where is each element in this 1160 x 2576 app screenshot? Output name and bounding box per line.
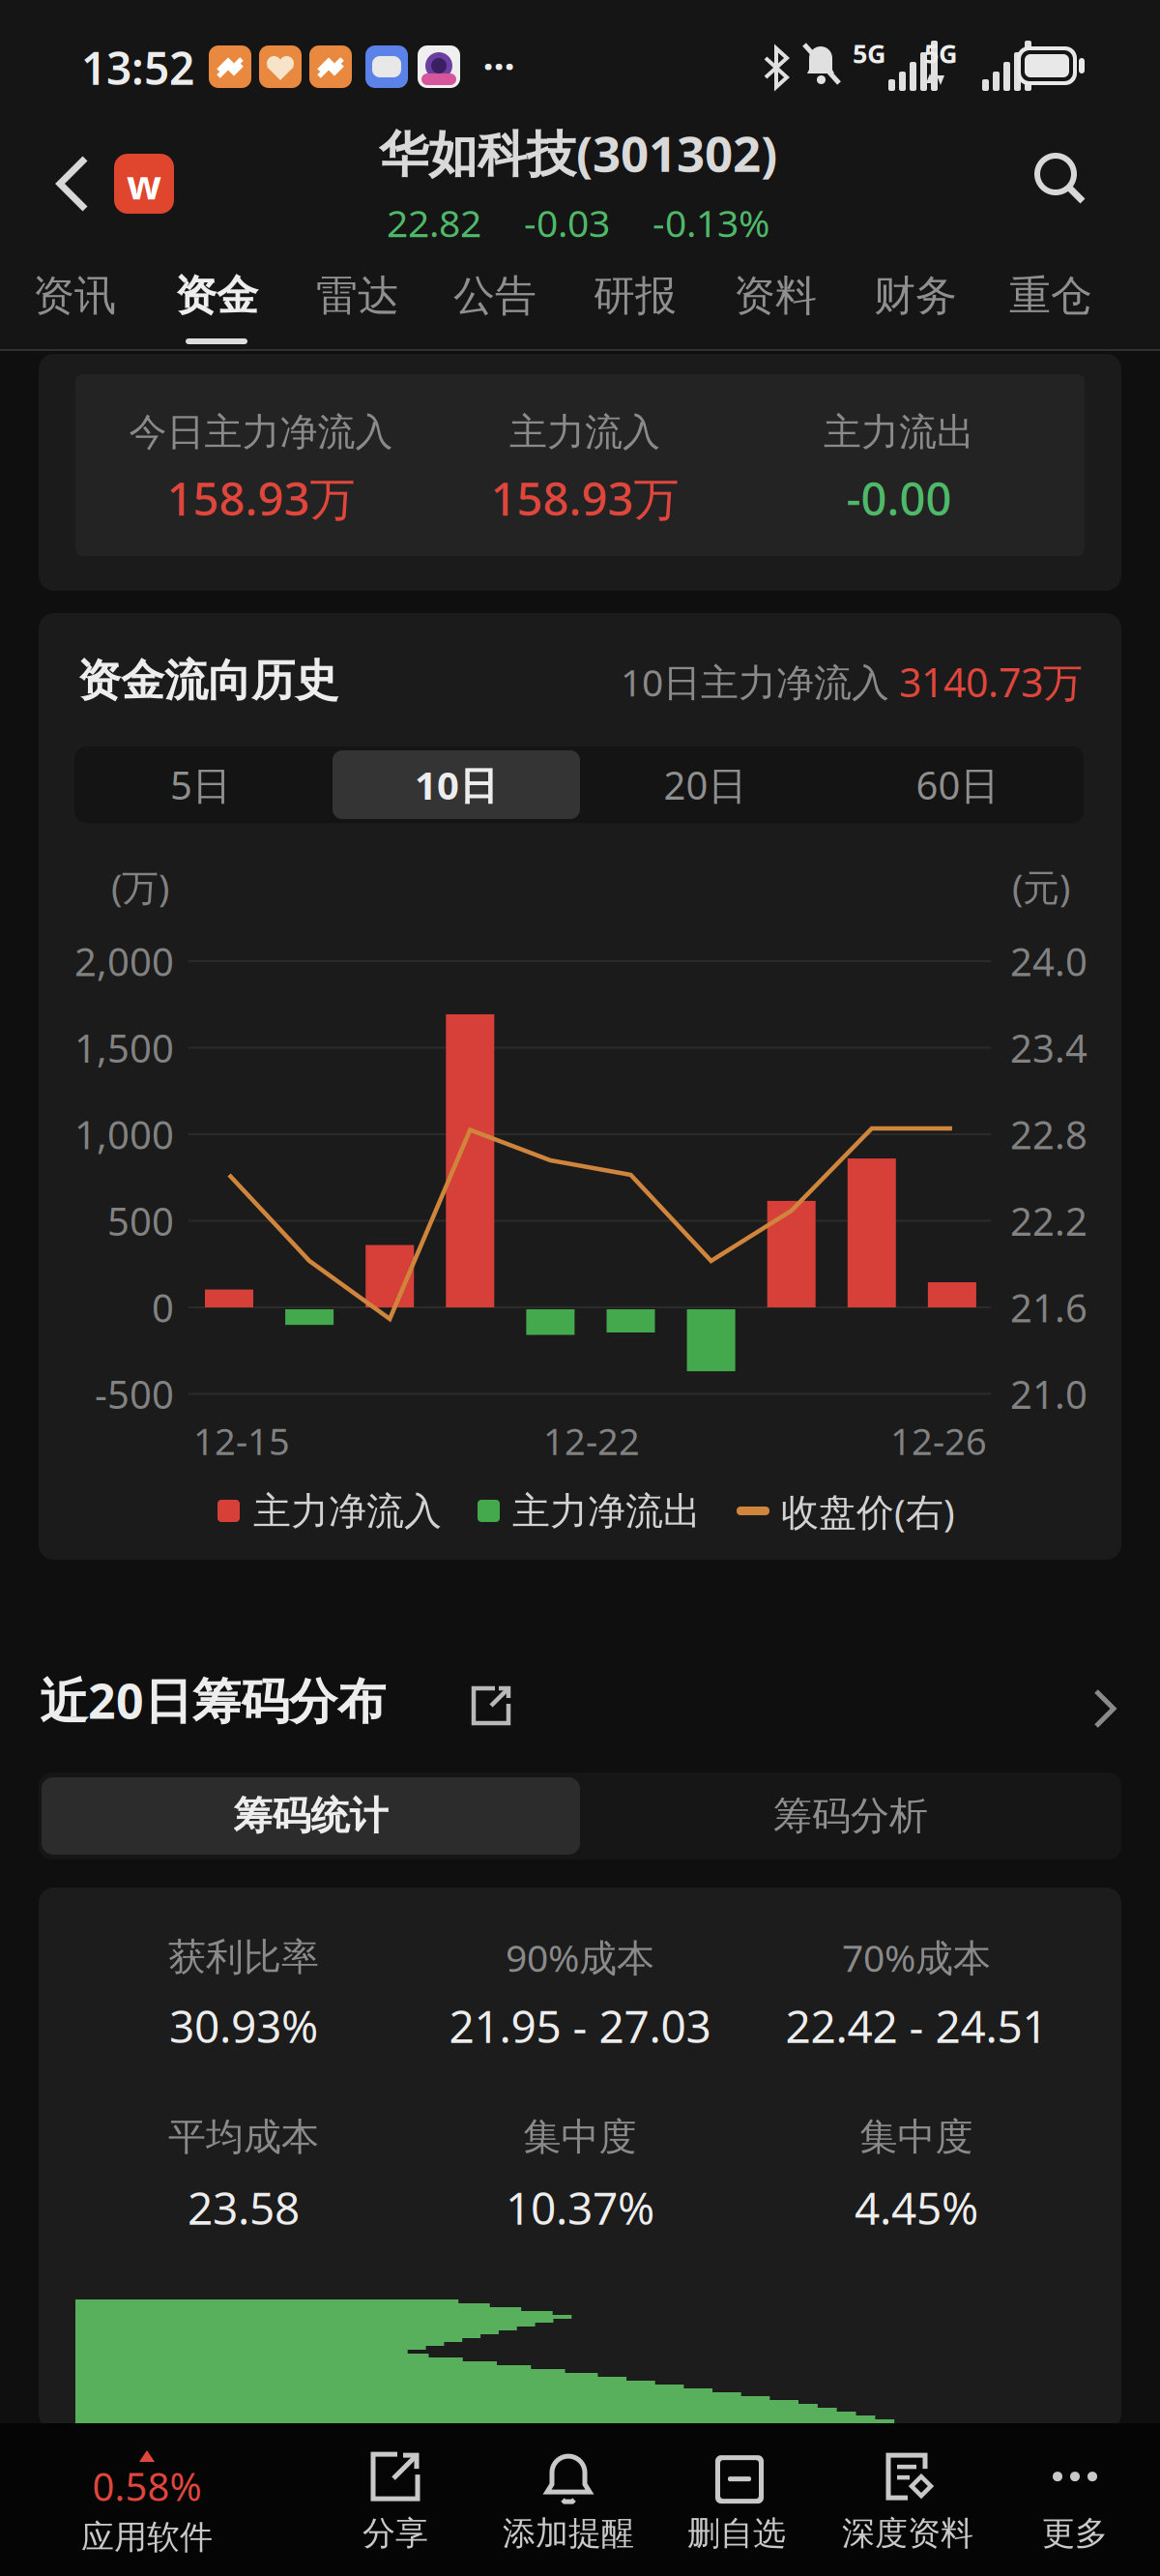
staticText: 22.2: [1010, 1195, 1087, 1246]
button[interactable]: Search: [1027, 145, 1094, 213]
staticText: 22.82: [387, 197, 481, 247]
staticText: 2,000: [74, 935, 174, 987]
staticText: 资料: [734, 270, 817, 321]
staticText: 雷达: [316, 270, 399, 321]
staticText: 12-15: [193, 1416, 290, 1465]
button[interactable]: 更多: [993, 2439, 1157, 2564]
staticText: 60日: [916, 759, 999, 810]
staticText: (万): [111, 862, 169, 911]
staticText: 应用软件: [81, 2517, 213, 2558]
button[interactable]: 筹码分析: [580, 1772, 1121, 1859]
staticText: 21.95 - 27.03: [449, 1996, 711, 2055]
button[interactable]: 添加提醒: [486, 2439, 651, 2564]
button[interactable]: 资金: [154, 259, 279, 333]
staticText: 主力流出: [824, 409, 974, 455]
button[interactable]: 研报: [572, 259, 698, 333]
staticText: 21.0: [1010, 1368, 1087, 1420]
staticText: 4.45%: [855, 2178, 978, 2237]
button[interactable]: 资料: [712, 259, 838, 333]
staticText: 近20日筹码分布: [40, 1668, 386, 1732]
staticText: 500: [107, 1195, 174, 1246]
button[interactable]: 资讯: [12, 259, 137, 333]
staticText: 更多: [1042, 2513, 1108, 2554]
staticText: 1,000: [74, 1109, 174, 1160]
staticText: 3140.73万: [899, 655, 1083, 708]
staticText: 5日: [170, 759, 231, 810]
staticText: 公告: [453, 270, 536, 321]
staticText: 23.4: [1010, 1022, 1087, 1073]
staticText: ···: [483, 40, 515, 91]
button[interactable]: App icon: [114, 154, 174, 214]
staticText: 0: [152, 1282, 174, 1333]
staticText: -0.03: [524, 197, 610, 247]
button[interactable]: 深度资料: [826, 2439, 990, 2564]
staticText: 获利比率: [168, 1934, 319, 1980]
button[interactable]: 删自选: [654, 2439, 819, 2564]
staticText: 30.93%: [169, 1996, 318, 2055]
staticText: 20日: [664, 759, 747, 810]
staticText: 资金: [175, 270, 258, 321]
staticText: 12-22: [543, 1416, 640, 1465]
button[interactable]: 10日: [333, 750, 580, 819]
staticText: 10.37%: [506, 2178, 654, 2237]
button[interactable]: 0.58%: [89, 2433, 224, 2562]
staticText: -0.00: [846, 468, 952, 528]
staticText: 主力净流出: [512, 1488, 701, 1534]
button[interactable]: 20日: [579, 746, 831, 823]
staticText: 0.58%: [92, 2460, 202, 2512]
staticText: 158.93万: [491, 468, 679, 528]
button[interactable]: 60日: [831, 746, 1084, 823]
button[interactable]: 雷达: [295, 259, 420, 333]
staticText: 23.58: [188, 2178, 300, 2237]
staticText: 5G: [853, 36, 886, 71]
staticText: -0.13%: [652, 197, 769, 247]
staticText: 70%成本: [842, 1932, 991, 1982]
staticText: 平均成本: [168, 2114, 319, 2160]
button[interactable]: 筹码统计: [42, 1777, 580, 1855]
staticText: 深度资料: [842, 2513, 973, 2554]
staticText: 1,500: [74, 1022, 174, 1073]
button[interactable]: 重仓: [988, 259, 1114, 333]
button[interactable]: 5日: [74, 746, 327, 823]
staticText: 22.8: [1010, 1109, 1087, 1160]
staticText: 21.6: [1010, 1282, 1087, 1333]
button[interactable]: 财务: [853, 259, 978, 333]
staticText: 5G: [924, 36, 958, 71]
staticText: 重仓: [1009, 270, 1092, 321]
staticText: 删自选: [687, 2513, 786, 2554]
staticText: 13:52: [81, 38, 194, 97]
staticText: 收盘价(右): [781, 1486, 955, 1536]
staticText: 筹码分析: [773, 1792, 928, 1840]
staticText: 主力流入: [509, 409, 660, 455]
staticText: 资讯: [33, 270, 116, 321]
staticText: 22.42 - 24.51: [785, 1996, 1047, 2055]
staticText: 10日: [415, 759, 498, 810]
staticText: 158.93万: [167, 468, 355, 528]
staticText: w: [127, 157, 161, 211]
button[interactable]: 分享: [313, 2439, 478, 2564]
staticText: 华如科技(301302): [379, 120, 777, 185]
staticText: 资金流向历史: [77, 654, 338, 708]
button[interactable]: More detail: [1085, 1680, 1125, 1738]
button[interactable]: 公告: [432, 259, 558, 333]
staticText: 12-26: [890, 1416, 987, 1465]
staticText: -500: [95, 1368, 174, 1420]
button[interactable]: Share: [462, 1677, 520, 1735]
staticText: (元): [1012, 862, 1070, 911]
staticText: 添加提醒: [503, 2513, 634, 2554]
staticText: 主力净流入: [253, 1488, 442, 1534]
staticText: 研报: [594, 270, 677, 321]
staticText: 10日主力净流入: [621, 657, 889, 707]
staticText: 今日主力净流入: [129, 409, 393, 455]
staticText: 90%成本: [506, 1932, 654, 1982]
staticText: 集中度: [523, 2114, 637, 2160]
staticText: 24.0: [1010, 935, 1087, 987]
staticText: 集中度: [860, 2114, 973, 2160]
staticText: 筹码统计: [233, 1792, 388, 1840]
button[interactable]: Back: [46, 145, 101, 224]
staticText: 分享: [362, 2513, 428, 2554]
staticText: 财务: [874, 270, 957, 321]
